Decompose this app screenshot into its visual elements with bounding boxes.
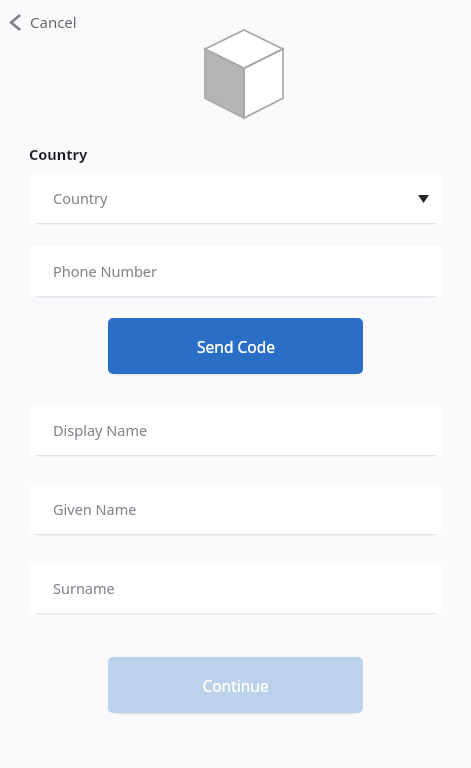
staticText: Continue <box>202 675 269 696</box>
button[interactable]: Country <box>29 173 442 223</box>
button[interactable]: Given Name <box>29 484 442 534</box>
staticText: Send Code <box>197 336 275 357</box>
staticText: Cancel <box>30 12 77 32</box>
staticText: Surname <box>53 578 115 598</box>
button[interactable]: Back <box>4 8 83 36</box>
staticText: Given Name <box>53 499 137 519</box>
staticText: Phone Number <box>53 261 158 281</box>
staticText: Country <box>29 144 88 164</box>
button[interactable]: Phone Number <box>29 246 442 296</box>
button[interactable]: Surname <box>29 563 442 613</box>
button[interactable]: Send Code <box>108 318 363 374</box>
button[interactable]: Display Name <box>29 405 442 455</box>
staticText: Country <box>53 188 108 208</box>
staticText: Display Name <box>53 420 148 440</box>
other: Back <box>10 14 21 31</box>
button[interactable]: Continue <box>108 657 363 713</box>
